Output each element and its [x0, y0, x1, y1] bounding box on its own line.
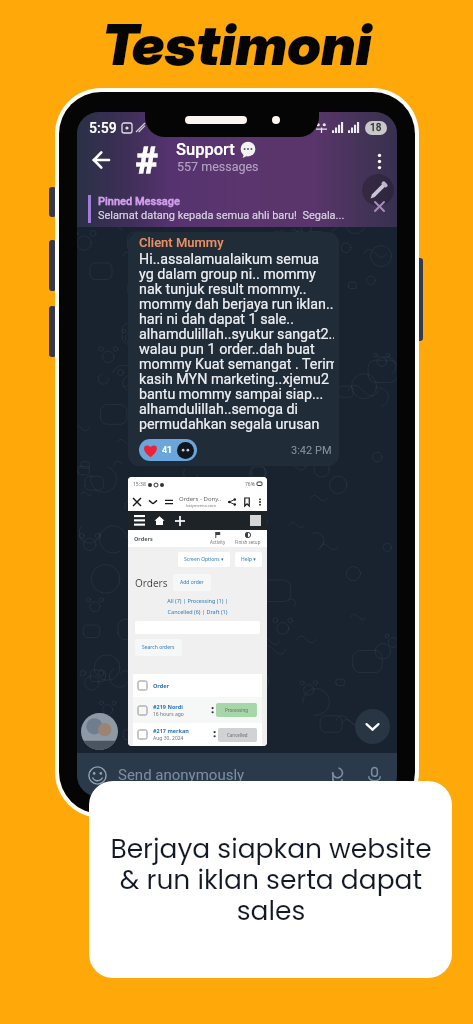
staticText: Aug 30, 2024 — [153, 735, 184, 742]
staticText: 41 — [162, 445, 173, 456]
button[interactable]: Voice message — [362, 763, 386, 787]
staticText: 15:38 — [133, 481, 146, 488]
staticText: Add order — [180, 579, 204, 586]
button[interactable]: Back — [86, 145, 115, 174]
staticText: 18 — [370, 122, 382, 134]
staticText: #217 merkan — [153, 727, 189, 734]
staticText: 76% — [245, 481, 255, 488]
staticText: Order — [153, 682, 169, 689]
staticText: #219 Nordi — [153, 703, 183, 710]
staticText: 16 hours ago — [153, 711, 184, 718]
button[interactable]: Unpin — [369, 196, 389, 216]
staticText: Selamat datang kepada semua ahli baru! S… — [98, 209, 345, 222]
button[interactable]: Scroll to bottom — [355, 709, 390, 744]
staticText: Hi..assalamualaikum semua yg dalam group… — [139, 251, 334, 433]
staticText: Processing — [225, 707, 248, 713]
staticText: All (7) | Processing (1) | Cancelled (6)… — [167, 597, 228, 615]
staticText: Orders - Dony.. — [179, 495, 222, 503]
staticText: Orders — [135, 576, 168, 590]
staticText: # — [135, 139, 158, 182]
staticText: Testimoni — [102, 11, 372, 79]
staticText: Finish setup — [235, 539, 261, 545]
staticText: Screen Options ▾ — [184, 556, 224, 563]
staticText: 3:42 PM — [291, 444, 332, 457]
staticText: Client Mummy — [139, 235, 224, 250]
staticText: Orders — [134, 535, 153, 542]
staticText: 5:59 — [89, 120, 117, 136]
staticText: 557 messages — [177, 159, 259, 174]
staticText: Activity — [210, 539, 226, 545]
button[interactable]: More options — [367, 149, 391, 173]
button[interactable]: Attach file — [325, 763, 349, 787]
staticText: Berjaya siapkan website & run iklan sert… — [110, 830, 432, 929]
staticText: Search orders — [142, 644, 175, 651]
button[interactable]: Edit — [362, 174, 394, 206]
staticText: Help ▾ — [241, 556, 256, 563]
staticText: Pinned Message — [98, 195, 180, 208]
staticText: Cancelled — [227, 732, 248, 738]
staticText: Support — [176, 140, 235, 159]
staticText: katymeena.com — [186, 503, 216, 508]
staticText: Send anonymously — [118, 766, 245, 784]
